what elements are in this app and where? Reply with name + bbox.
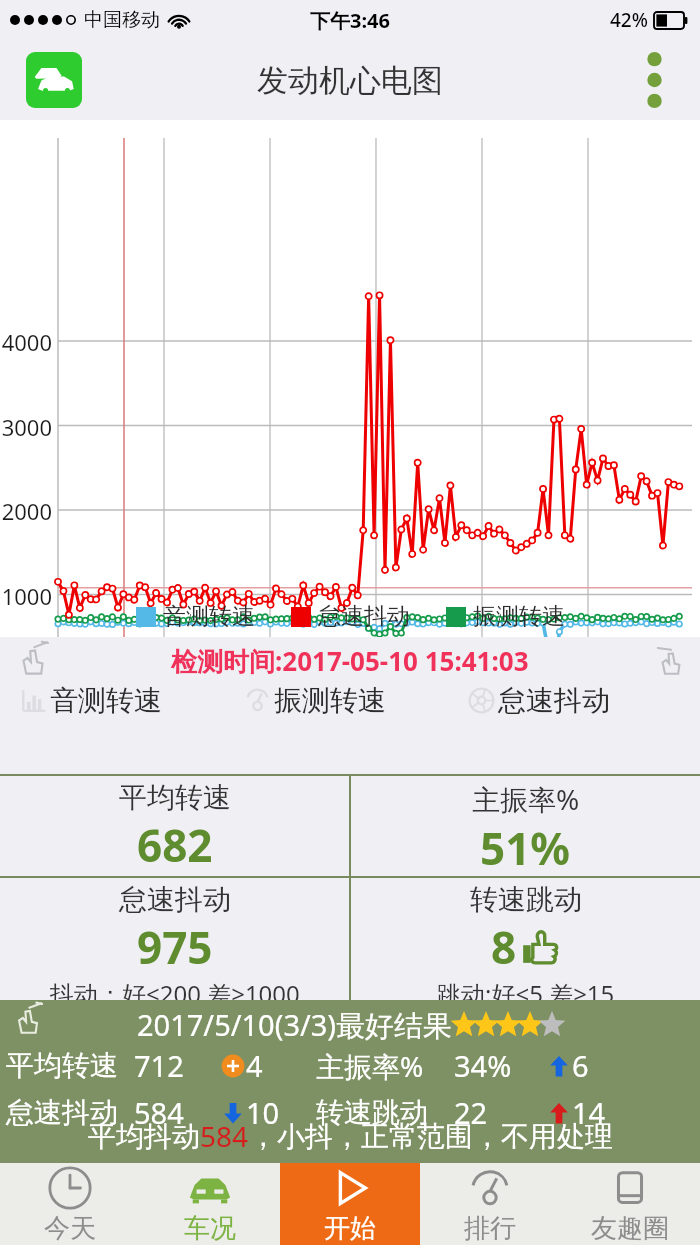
button[interactable]: 怠速抖动 <box>0 878 349 1000</box>
staticText: 主振率% <box>316 1047 454 1085</box>
staticText: 584 <box>134 1093 220 1132</box>
staticText: 22 <box>454 1093 546 1132</box>
staticText: 友趣圈 <box>591 1212 669 1245</box>
staticText: ，小抖，正常范围，不用处理 <box>249 1119 613 1154</box>
staticText: 开始 <box>324 1212 376 1245</box>
staticText: 车况 <box>184 1212 236 1245</box>
staticText: 42% <box>610 7 648 33</box>
button[interactable]: 友趣圈 <box>560 1163 700 1245</box>
button[interactable]: 振测转速 <box>244 683 468 718</box>
staticText: 60 <box>351 686 401 716</box>
button[interactable]: 怠速抖动 <box>468 683 692 718</box>
staticText: 1000 <box>0 581 52 611</box>
staticText: 3000 <box>0 412 52 442</box>
staticText: 0 <box>0 665 52 695</box>
staticText: 跳动:好<5 差>15 <box>437 977 615 1000</box>
button[interactable]: 车辆 <box>26 52 82 108</box>
button[interactable]: 排行 <box>420 1163 560 1245</box>
staticText: 平均转速 <box>119 780 231 815</box>
staticText: 今天 <box>44 1212 96 1245</box>
staticText: 584 <box>200 1117 249 1155</box>
staticText: 怠速抖动 <box>119 882 231 917</box>
staticText: 2000 <box>0 496 52 526</box>
button[interactable]: 转速跳动 <box>351 878 700 1000</box>
staticText: 4 <box>246 1046 263 1085</box>
button[interactable]: 音测转速 <box>20 683 244 718</box>
staticText: 100 <box>563 686 613 716</box>
staticText: 转速跳动 <box>470 882 582 917</box>
staticText: 主振率% <box>472 780 580 818</box>
staticText: 抖动：好<200 差>1000 <box>50 977 300 1000</box>
button[interactable]: 开始 <box>280 1163 420 1245</box>
staticText: 检测时间:2017-05-10 15:41:03 <box>171 643 529 679</box>
button[interactable]: 车况 <box>140 1163 280 1245</box>
staticText: 音测转速 <box>163 602 255 631</box>
staticText: 2017/5/10(3/3)最好结果 <box>137 1005 453 1045</box>
staticText: 怠速抖动 <box>318 602 410 631</box>
button[interactable]: 更多 <box>634 48 674 112</box>
staticText: 14 <box>572 1093 606 1132</box>
button[interactable]: 主振率% <box>351 776 700 876</box>
staticText: 发动机心电图 <box>257 61 443 100</box>
staticText: 34% <box>454 1046 546 1085</box>
staticText: 排行 <box>464 1212 516 1245</box>
staticText: 怠速抖动 <box>6 1095 134 1130</box>
staticText: 80 <box>457 686 507 716</box>
staticText: 转速跳动 <box>316 1095 454 1130</box>
staticText: 6 <box>572 1046 589 1085</box>
staticText: 振测转速 <box>274 683 386 718</box>
staticText: 712 <box>134 1046 220 1085</box>
staticText: 怠速抖动 <box>498 683 610 718</box>
staticText: 下午3:46 <box>310 7 390 34</box>
button[interactable]: 今天 <box>0 1163 140 1245</box>
staticText: 平均抖动 <box>88 1119 200 1154</box>
staticText: 40 <box>245 686 295 716</box>
staticText: 8 <box>491 917 517 977</box>
button[interactable]: 平均转速 <box>0 776 349 876</box>
staticText: 20 <box>139 686 189 716</box>
staticText: 中国移动 <box>84 8 160 32</box>
staticText: 4000 <box>0 327 52 357</box>
staticText: 10 <box>246 1093 280 1132</box>
staticText: 平均转速 <box>6 1048 134 1083</box>
staticText: 振测转速 <box>473 602 565 631</box>
staticText: 51% <box>480 818 571 876</box>
staticText: 音测转速 <box>50 683 162 718</box>
staticText: 682 <box>137 815 213 875</box>
staticText: 975 <box>137 917 213 977</box>
staticText: 0 <box>33 686 83 716</box>
